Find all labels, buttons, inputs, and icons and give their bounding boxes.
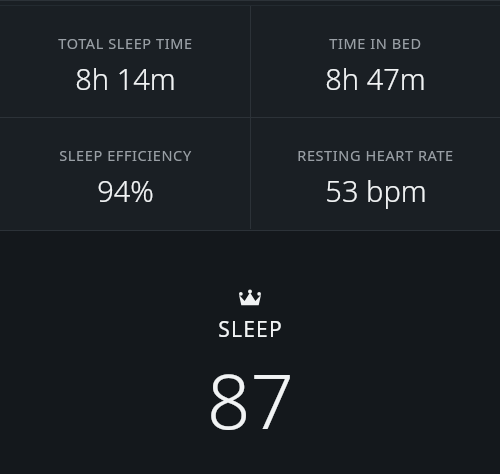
button[interactable]: RESTING HEART RATE [251,118,500,229]
button[interactable]: TIME IN BED [251,6,500,117]
staticText: 8h 14m [75,59,176,98]
staticText: 87 [207,348,294,452]
staticText: 8h 47m [325,59,426,98]
button[interactable]: SLEEP EFFICIENCY [0,118,250,229]
staticText: RESTING HEART RATE [297,145,454,165]
staticText: 53 bpm [325,171,427,210]
staticText: SLEEP [218,315,283,344]
staticText: TOTAL SLEEP TIME [58,33,193,53]
staticText: SLEEP EFFICIENCY [59,145,192,165]
staticText: TIME IN BED [329,33,422,53]
button[interactable]: Sleep score crown [0,231,500,474]
other: Sleep score crown [239,290,261,306]
button[interactable]: TOTAL SLEEP TIME [0,6,250,117]
staticText: 94% [97,171,154,210]
